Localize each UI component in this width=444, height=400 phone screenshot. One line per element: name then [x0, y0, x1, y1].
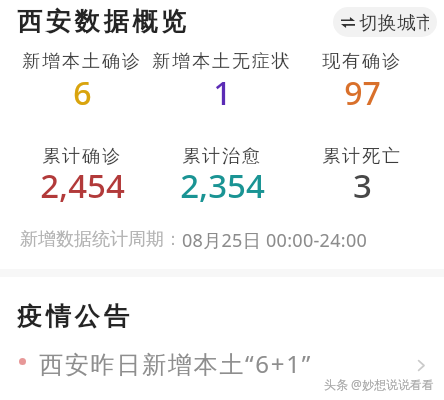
staticText: 西安数据概览 — [17, 6, 190, 37]
staticText: 现有确诊 — [322, 50, 402, 73]
staticText: 累计治愈 — [182, 145, 262, 168]
staticText: 新增数据统计周期： — [20, 228, 182, 251]
staticText: 97 — [344, 71, 381, 115]
staticText: 2,354 — [180, 163, 265, 208]
staticText: 新增本土无症状 — [152, 50, 292, 73]
button[interactable]: Switch city — [333, 7, 437, 37]
staticText: 累计确诊 — [42, 145, 122, 168]
staticText: 新增本土确诊 — [22, 50, 142, 73]
staticText: 疫情公告 — [17, 301, 133, 332]
button[interactable]: 西安昨日新增本土“6+1” — [0, 341, 444, 385]
staticText: 头条 @妙想说说看看 — [324, 376, 434, 392]
staticText: 切换城市 — [359, 11, 429, 34]
staticText: 08月25日 00:00-24:00 — [182, 228, 368, 253]
staticText: 2,454 — [40, 163, 125, 208]
other: Switch city — [341, 17, 355, 28]
staticText: 6 — [73, 71, 92, 115]
staticText: 3 — [353, 163, 372, 208]
staticText: 1 — [213, 71, 232, 115]
staticText: 累计死亡 — [322, 145, 402, 168]
staticText: 西安昨日新增本土“6+1” — [39, 347, 313, 380]
